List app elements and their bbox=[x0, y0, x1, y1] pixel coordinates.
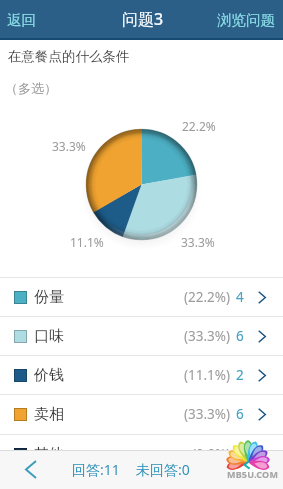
button[interactable]: 价钱 bbox=[0, 356, 283, 394]
button[interactable]: 浏览问题 bbox=[203, 1, 283, 39]
staticText: 浏览问题 bbox=[217, 11, 275, 29]
button[interactable]: 其他 bbox=[0, 435, 283, 473]
staticText: （多选） bbox=[5, 80, 57, 96]
staticText: 6 bbox=[236, 327, 244, 345]
staticText: 11.1% bbox=[70, 234, 104, 250]
staticText: 未回答:0 bbox=[136, 460, 190, 479]
staticText: (33.3%) bbox=[184, 405, 231, 423]
staticText: 2 bbox=[236, 366, 244, 384]
staticText: 口味 bbox=[34, 327, 64, 346]
staticText: 4 bbox=[236, 288, 244, 306]
staticText: 6 bbox=[236, 405, 244, 423]
staticText: 22.2% bbox=[182, 118, 216, 134]
staticText: 33.3% bbox=[52, 138, 86, 154]
button[interactable]: 卖相 bbox=[0, 395, 283, 433]
staticText: 回答:11 bbox=[72, 460, 120, 479]
staticText: 价钱 bbox=[34, 366, 64, 385]
staticText: 0 bbox=[236, 445, 244, 463]
staticText: 33.3% bbox=[181, 234, 215, 250]
staticText: (11.1%) bbox=[184, 366, 231, 384]
staticText: 份量 bbox=[34, 288, 64, 307]
staticText: (0.0%) bbox=[192, 445, 231, 463]
staticText: (22.2%) bbox=[184, 288, 231, 306]
button[interactable]: 返回 bbox=[0, 1, 50, 39]
button[interactable]: 口味 bbox=[0, 317, 283, 355]
staticText: MB5U.COM bbox=[227, 468, 279, 480]
staticText: 卖相 bbox=[34, 405, 64, 424]
staticText: 在意餐点的什么条件 bbox=[8, 48, 130, 65]
staticText: (33.3%) bbox=[184, 327, 231, 345]
button[interactable]: 份量 bbox=[0, 278, 283, 316]
button[interactable]: Back bbox=[0, 450, 62, 489]
staticText: 其他 bbox=[34, 445, 64, 464]
staticText: 返回 bbox=[7, 11, 36, 29]
staticText: 问题3 bbox=[122, 8, 164, 30]
